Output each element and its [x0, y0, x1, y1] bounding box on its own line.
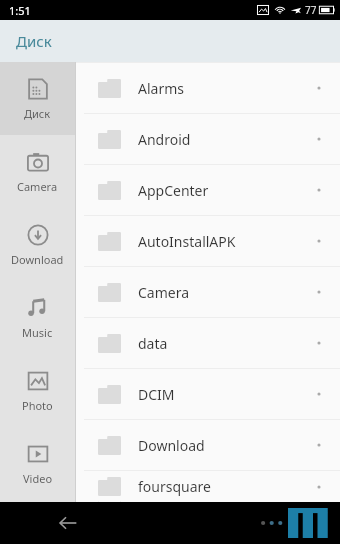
staticText: 1:51	[9, 3, 31, 18]
button[interactable]: Диск	[0, 62, 75, 135]
button[interactable]: Download	[0, 208, 75, 281]
staticText: Android	[138, 130, 312, 149]
button[interactable]: Alarms	[76, 63, 340, 113]
button[interactable]: Download	[76, 420, 340, 470]
button[interactable]: Camera	[76, 267, 340, 317]
button[interactable]: AutoInstallAPK	[76, 216, 340, 266]
button[interactable]: AppCenter	[76, 165, 340, 215]
staticText: Camera	[17, 179, 58, 194]
staticText: AutoInstallAPK	[138, 232, 312, 251]
button[interactable]: Android	[76, 114, 340, 164]
button[interactable]: DCIM	[76, 369, 340, 419]
staticText: DCIM	[138, 385, 312, 404]
staticText: Music	[22, 325, 53, 340]
staticText: Диск	[16, 31, 52, 51]
button[interactable]: Photo	[0, 354, 75, 427]
button[interactable]: Music	[0, 281, 75, 354]
button[interactable]: foursquare	[76, 471, 340, 502]
staticText: Download	[11, 252, 64, 267]
staticText: Camera	[138, 283, 312, 302]
button[interactable]: data	[76, 318, 340, 368]
staticText: Alarms	[138, 79, 312, 98]
staticText: foursquare	[138, 477, 312, 496]
staticText: Photo	[22, 398, 53, 413]
staticText: AppCenter	[138, 181, 312, 200]
staticText: Video	[23, 471, 53, 486]
staticText: Диск	[24, 106, 51, 121]
staticText: data	[138, 334, 312, 353]
staticText: 77	[305, 3, 317, 17]
button[interactable]: Video	[0, 427, 75, 500]
button[interactable]: Back	[48, 503, 88, 543]
button[interactable]: Camera	[0, 135, 75, 208]
staticText: Download	[138, 436, 312, 455]
